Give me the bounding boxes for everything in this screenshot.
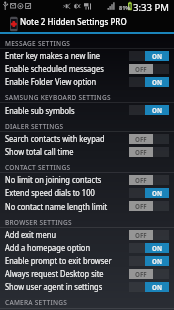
staticText: 3:33 PM <box>133 1 170 13</box>
button[interactable]: Enter key makes a new line <box>0 49 174 62</box>
button[interactable]: Add a homepage option <box>0 241 174 254</box>
button[interactable]: No limit on joining contacts <box>0 173 174 186</box>
staticText: Add exit menu <box>5 229 116 240</box>
button[interactable]: Enable prompt to exit browser <box>0 254 174 267</box>
staticText: ON <box>152 106 162 114</box>
staticText: No limit on joining contacts <box>5 174 116 185</box>
button[interactable]: Add exit menu <box>0 228 174 241</box>
staticText: Enable sub symbols <box>5 105 116 116</box>
staticText: Show user agent in settings <box>5 281 116 292</box>
staticText: OFF <box>135 176 147 184</box>
staticText: OFF <box>135 65 147 73</box>
staticText: ON <box>152 189 162 197</box>
staticText: Enable prompt to exit browser <box>5 255 116 266</box>
staticText: OFF <box>135 231 147 239</box>
button[interactable]: Search contacts with keypad <box>0 132 174 145</box>
staticText: Enable Folder View option <box>5 76 116 87</box>
staticText: No contact name length limit <box>5 201 116 212</box>
staticText: Show total call time <box>5 146 116 157</box>
staticText: ON <box>152 244 162 252</box>
staticText: BROWSER SETTINGS <box>5 218 72 227</box>
staticText: SAMSUNG KEYBOARD SETTINGS <box>5 93 111 102</box>
staticText: DIALER SETTINGS <box>5 122 64 131</box>
staticText: Note 2 Hidden Settings PRO <box>20 16 127 27</box>
button[interactable]: Always request Desktop site <box>0 267 174 280</box>
button[interactable]: Show user agent in settings <box>0 280 174 293</box>
button[interactable]: Enable scheduled messages <box>0 62 174 75</box>
staticText: CAMERA SETTINGS <box>5 298 68 307</box>
staticText: MESSAGE SETTINGS <box>5 39 71 48</box>
staticText: 81% <box>119 4 131 11</box>
staticText: Enter key makes a new line <box>5 50 116 61</box>
staticText: Search contacts with keypad <box>5 133 116 144</box>
staticText: Add a homepage option <box>5 242 116 253</box>
button[interactable]: No contact name length limit <box>0 199 174 213</box>
button[interactable]: Enable Folder View option <box>0 75 174 88</box>
staticText: OFF <box>135 270 147 278</box>
staticText: ON <box>152 52 162 60</box>
staticText: ON <box>152 257 162 265</box>
staticText: OFF <box>135 202 147 210</box>
button[interactable]: Extend speed dials to 100 <box>0 186 174 199</box>
button[interactable]: Show total call time <box>0 145 174 158</box>
staticText: CONTACT SETTINGS <box>5 163 71 172</box>
staticText: Enable scheduled messages <box>5 63 116 74</box>
staticText: Extend speed dials to 100 <box>5 187 116 198</box>
staticText: OFF <box>135 135 147 143</box>
button[interactable]: Enable sub symbols <box>0 103 174 117</box>
staticText: OFF <box>135 148 147 156</box>
staticText: ON <box>152 283 162 291</box>
staticText: ON <box>152 78 162 86</box>
staticText: Always request Desktop site <box>5 268 116 279</box>
